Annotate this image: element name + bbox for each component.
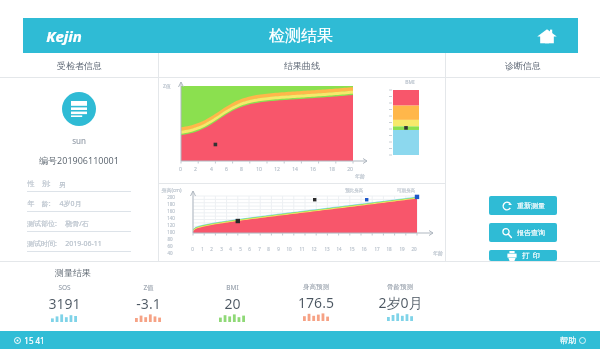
staticText: 身高预测 bbox=[303, 283, 329, 291]
staticText: 80 bbox=[167, 236, 173, 242]
staticText: 测试部位: bbox=[27, 219, 57, 229]
staticText: BMI bbox=[405, 79, 415, 86]
staticText: 受检者信息 bbox=[57, 60, 102, 71]
staticText: 60 bbox=[167, 243, 173, 249]
staticText: 男 bbox=[59, 180, 66, 189]
staticText: 200 bbox=[167, 194, 175, 200]
staticText: 结果曲线 bbox=[284, 60, 320, 71]
button[interactable]: 报告查询 bbox=[489, 223, 557, 242]
staticText: 2 bbox=[194, 166, 197, 173]
staticText: SOS bbox=[58, 283, 71, 292]
staticText: BMI bbox=[226, 283, 239, 292]
staticText: 可期身高 bbox=[397, 188, 415, 194]
staticText: 8 bbox=[267, 246, 270, 252]
staticText: 19 bbox=[399, 246, 405, 252]
staticText: 120 bbox=[167, 222, 175, 228]
staticText: 3191 bbox=[48, 294, 81, 313]
staticText: 报告查询 bbox=[517, 228, 545, 237]
staticText: 16 bbox=[310, 166, 316, 173]
staticText: 6 bbox=[225, 166, 228, 173]
staticText: 0 bbox=[179, 166, 182, 173]
staticText: 2岁0月 bbox=[378, 293, 423, 312]
staticText: Z值 bbox=[163, 83, 171, 90]
staticText: 15 bbox=[349, 246, 355, 252]
staticText: 身高(cm) bbox=[161, 187, 182, 194]
staticText: 12 bbox=[311, 246, 317, 252]
staticText: 160 bbox=[167, 208, 175, 214]
staticText: 10 bbox=[256, 166, 262, 173]
staticText: 0 bbox=[191, 246, 194, 252]
staticText: 14 bbox=[292, 166, 298, 173]
staticText: 16 bbox=[361, 246, 367, 252]
button[interactable]: 骨龄预测 bbox=[358, 283, 442, 321]
staticText: 1 bbox=[201, 246, 204, 252]
staticText: 14 bbox=[336, 246, 342, 252]
staticText: 40 bbox=[167, 250, 173, 256]
staticText: 17 bbox=[374, 246, 380, 252]
staticText: 20 bbox=[411, 246, 417, 252]
staticText: 测试时间: bbox=[27, 239, 57, 249]
staticText: 测量结果 bbox=[55, 267, 91, 278]
staticText: 9 bbox=[277, 246, 280, 252]
staticText: 100 bbox=[167, 229, 175, 235]
staticText: -3.1 bbox=[136, 294, 161, 313]
staticText: 4 bbox=[210, 166, 213, 173]
staticText: 12 bbox=[274, 166, 280, 173]
staticText: Kejin bbox=[46, 26, 82, 46]
staticText: 3 bbox=[220, 246, 223, 252]
staticText: 13 bbox=[324, 246, 330, 252]
staticText: 8 bbox=[240, 166, 243, 173]
button[interactable]: 帮助 bbox=[560, 335, 586, 345]
button[interactable]: 打 印 bbox=[489, 250, 557, 261]
button[interactable]: SOS bbox=[22, 283, 106, 322]
staticText: 打 印 bbox=[522, 251, 540, 261]
staticText: 15 41 bbox=[24, 335, 45, 346]
staticText: 性 别: bbox=[27, 179, 51, 189]
staticText: 年龄 bbox=[355, 173, 365, 179]
staticText: 年 龄: bbox=[27, 199, 51, 209]
staticText: 重新测量 bbox=[517, 201, 545, 210]
staticText: 帮助 bbox=[560, 335, 576, 345]
staticText: 4岁0月 bbox=[59, 199, 82, 209]
staticText: sun bbox=[72, 135, 86, 146]
staticText: 4 bbox=[229, 246, 232, 252]
staticText: 年龄 bbox=[433, 250, 443, 256]
staticText: 140 bbox=[167, 215, 175, 221]
staticText: 11 bbox=[299, 246, 305, 252]
staticText: 176.5 bbox=[298, 293, 334, 312]
staticText: 桡骨/右 bbox=[65, 219, 89, 229]
staticText: 5 bbox=[239, 246, 242, 252]
staticText: Z值 bbox=[143, 283, 154, 292]
staticText: 20 bbox=[347, 166, 353, 173]
staticText: 180 bbox=[167, 201, 175, 207]
staticText: 2 bbox=[210, 246, 213, 252]
staticText: 骨龄预测 bbox=[387, 283, 413, 291]
staticText: 18 bbox=[329, 166, 335, 173]
button[interactable]: Z值 bbox=[106, 283, 190, 322]
staticText: 预比身高 bbox=[345, 188, 363, 194]
staticText: 10 bbox=[286, 246, 292, 252]
staticText: 诊断信息 bbox=[505, 60, 541, 71]
staticText: 7 bbox=[258, 246, 261, 252]
staticText: 18 bbox=[386, 246, 392, 252]
button[interactable]: BMI bbox=[190, 283, 274, 322]
staticText: 2019-06-11 bbox=[65, 239, 102, 249]
button[interactable]: 重新测量 bbox=[489, 196, 557, 215]
staticText: 6 bbox=[248, 246, 251, 252]
staticText: 20 bbox=[224, 294, 241, 313]
staticText: 检测结果 bbox=[269, 26, 333, 46]
button[interactable]: 身高预测 bbox=[274, 283, 358, 321]
staticText: 编号201906110001 bbox=[39, 154, 119, 166]
button[interactable]: Home bbox=[534, 23, 560, 49]
